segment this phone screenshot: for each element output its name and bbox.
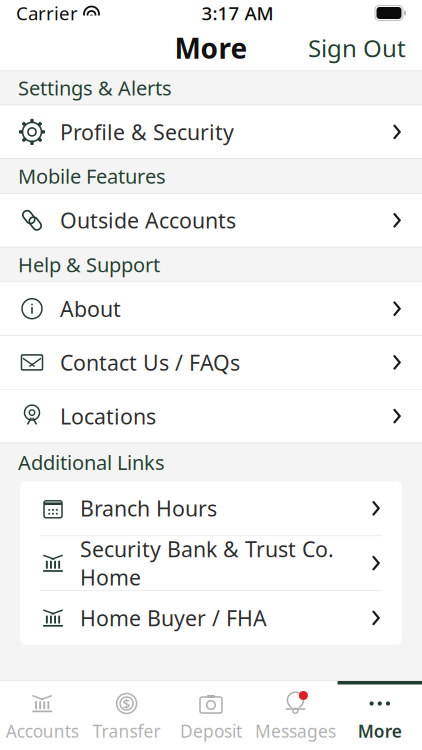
staticText: Mobile Features [18,163,166,189]
button[interactable]: More [338,681,422,750]
button[interactable]: About [0,282,422,335]
button[interactable]: Outside Accounts [0,194,422,247]
staticText: Locations [60,402,156,430]
staticText: Profile & Security [60,118,234,146]
staticText: Contact Us / FAQs [60,348,240,376]
staticText: Transfer [93,719,161,742]
button[interactable]: Profile & Security [0,105,422,158]
staticText: Help & Support [18,251,160,278]
staticText: More [174,29,247,67]
staticText: $ [123,695,131,712]
staticText: Sign Out [308,32,406,64]
button[interactable]: Branch Hours [20,481,402,535]
staticText: Security Bank & Trust Co. Home [80,535,334,591]
button[interactable]: Accounts [0,681,84,750]
button[interactable]: Deposit [169,681,253,750]
staticText: About [60,294,121,323]
button[interactable]: Locations [0,390,422,443]
button[interactable]: Contact Us / FAQs [0,336,422,389]
button[interactable]: Sign Out [292,24,422,72]
staticText: Outside Accounts [60,206,236,234]
staticText: Accounts [6,719,79,742]
button[interactable]: $ [84,681,169,750]
staticText: Settings & Alerts [18,74,172,101]
staticText: 3:17 AM [201,1,273,25]
button[interactable]: Messages [253,681,338,750]
staticText: Deposit [180,719,242,742]
staticText: Home Buyer / FHA [80,604,267,632]
button[interactable]: Home Buyer / FHA [20,591,402,645]
staticText: Branch Hours [80,494,217,522]
staticText: Messages [255,719,336,742]
button[interactable]: Security Bank & Trust Co. Home [20,536,402,590]
staticText: More [358,719,402,742]
staticText: Additional Links [18,449,165,476]
staticText: Carrier [16,1,78,25]
